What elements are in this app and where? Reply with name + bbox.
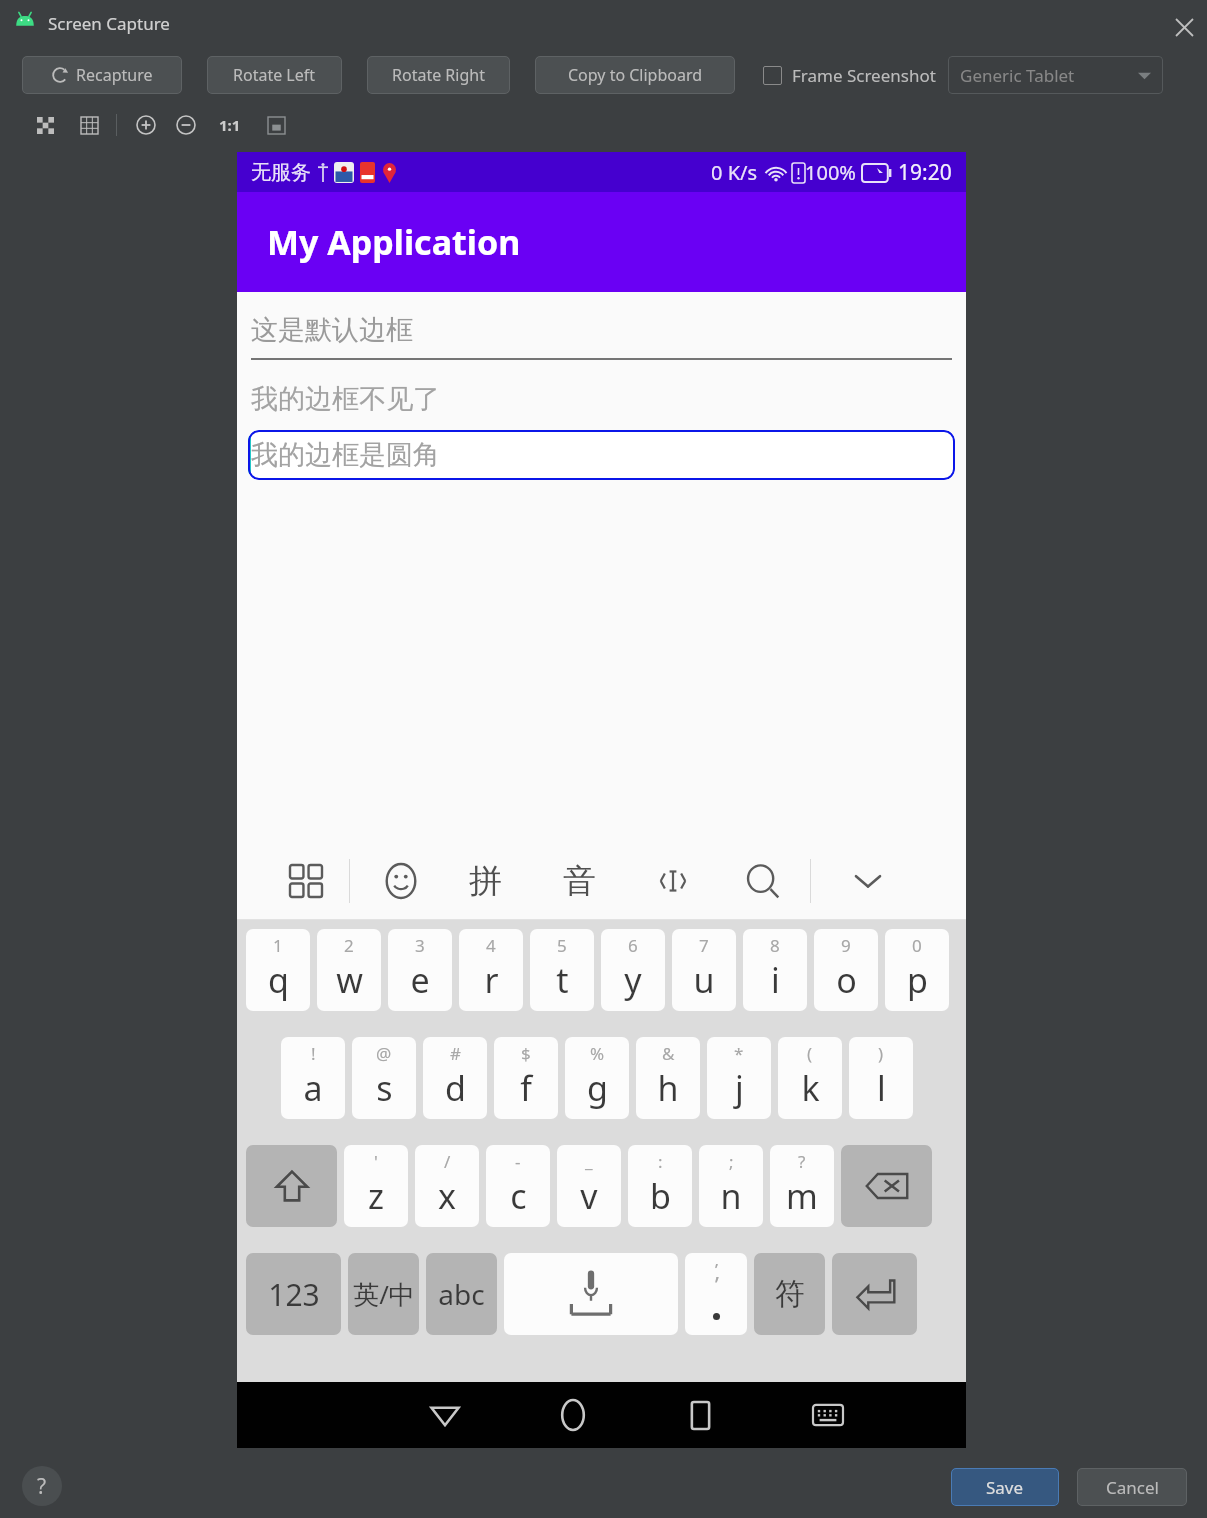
button[interactable]: 3 — [388, 929, 452, 1011]
button[interactable]: 8 — [743, 929, 807, 1011]
button[interactable]: ; — [699, 1145, 763, 1227]
button[interactable]: : — [628, 1145, 692, 1227]
button[interactable]: Cursor move — [644, 852, 702, 910]
staticText: 拼 — [469, 860, 502, 902]
button[interactable]: 英/中 — [348, 1253, 419, 1335]
button[interactable]: Hide keyboard — [839, 852, 897, 910]
button[interactable]: ? — [770, 1145, 834, 1227]
staticText: : — [658, 1150, 663, 1173]
button[interactable]: Emoji — [372, 852, 430, 910]
staticText: abc — [438, 1275, 485, 1313]
staticText: Generic Tablet — [960, 64, 1075, 87]
staticText: 3 — [415, 934, 425, 957]
button[interactable]: - — [486, 1145, 550, 1227]
button[interactable]: @ — [352, 1037, 416, 1119]
staticText: 100% — [805, 159, 856, 186]
staticText: l — [877, 1065, 886, 1111]
button[interactable]: 4 — [459, 929, 523, 1011]
button[interactable]: * — [707, 1037, 771, 1119]
staticText: s — [376, 1065, 393, 1111]
button[interactable]: 5 — [530, 929, 594, 1011]
button[interactable]: Cancel — [1077, 1468, 1187, 1506]
button[interactable]: Rotate Left — [207, 56, 342, 94]
staticText: b — [650, 1173, 671, 1219]
button[interactable]: Recapture — [22, 56, 182, 94]
staticText: ’ — [715, 1269, 719, 1299]
button[interactable]: Zoom out — [171, 110, 201, 140]
button[interactable]: Enter — [832, 1253, 917, 1335]
staticText: _ — [585, 1150, 593, 1173]
button[interactable]: Home — [545, 1387, 601, 1443]
staticText: u — [693, 957, 715, 1003]
staticText: o — [836, 957, 857, 1003]
staticText: 123 — [268, 1274, 320, 1315]
button[interactable]: Shift — [246, 1145, 337, 1227]
button[interactable]: 2 — [317, 929, 381, 1011]
button[interactable]: ) — [849, 1037, 913, 1119]
button[interactable]: 9 — [814, 929, 878, 1011]
staticText: My Application — [267, 219, 521, 265]
button[interactable]: Recents — [672, 1387, 728, 1443]
button[interactable]: Fit to window — [261, 110, 291, 140]
button[interactable]: Switch keyboard — [800, 1387, 856, 1443]
button[interactable]: Frame Screenshot — [763, 64, 936, 87]
staticText: g — [587, 1065, 608, 1111]
button[interactable]: _ — [557, 1145, 621, 1227]
button[interactable]: # — [423, 1037, 487, 1119]
button[interactable]: / — [415, 1145, 479, 1227]
button[interactable]: Back — [417, 1387, 473, 1443]
button[interactable]: & — [636, 1037, 700, 1119]
button[interactable]: Zoom in — [131, 110, 161, 140]
button[interactable]: ( — [778, 1037, 842, 1119]
button[interactable]: $ — [494, 1037, 558, 1119]
button[interactable]: 123 — [246, 1253, 341, 1335]
button[interactable]: ’ — [685, 1253, 747, 1335]
button[interactable]: Copy to Clipboard — [535, 56, 735, 94]
staticText: $ — [521, 1042, 531, 1065]
button[interactable]: Space / voice input — [504, 1253, 678, 1335]
staticText: 5 — [557, 934, 567, 957]
button[interactable]: Keyboard menu — [277, 852, 335, 910]
staticText: * — [734, 1042, 744, 1065]
button[interactable]: 1:1 — [213, 110, 247, 140]
button[interactable]: 拼 — [456, 852, 514, 910]
staticText: 我的边框不见了 — [251, 382, 440, 416]
button[interactable]: Save — [951, 1468, 1059, 1506]
button[interactable]: Rotate Right — [367, 56, 510, 94]
staticText: 英/中 — [353, 1276, 415, 1312]
button[interactable]: 我的边框是圆角 — [248, 430, 955, 480]
button[interactable]: ! — [281, 1037, 345, 1119]
button[interactable]: Help — [22, 1466, 62, 1506]
button[interactable]: 1 — [246, 929, 310, 1011]
staticText: t — [556, 957, 569, 1003]
button[interactable]: 7 — [672, 929, 736, 1011]
button[interactable]: Backspace — [841, 1145, 932, 1227]
button[interactable]: abc — [426, 1253, 497, 1335]
staticText: / — [444, 1150, 451, 1173]
staticText: y — [624, 957, 642, 1003]
button[interactable]: Grid — [74, 110, 104, 140]
staticText: 我的边框是圆角 — [251, 438, 440, 472]
button[interactable]: Transparency — [30, 110, 60, 140]
button[interactable]: % — [565, 1037, 629, 1119]
button[interactable]: Close — [1161, 4, 1207, 50]
staticText: n — [720, 1173, 742, 1219]
staticText: Screen Capture — [48, 12, 170, 35]
button[interactable]: 符 — [754, 1253, 825, 1335]
staticText: 7 — [699, 934, 709, 957]
staticText: j — [735, 1065, 744, 1111]
staticText: z — [368, 1173, 384, 1219]
button[interactable]: 音 — [550, 852, 608, 910]
button[interactable]: 0 — [885, 929, 949, 1011]
staticText: 音 — [563, 860, 596, 902]
staticText: 1:1 — [219, 115, 241, 135]
staticText: @ — [376, 1042, 392, 1065]
button[interactable]: Search — [734, 852, 792, 910]
button[interactable]: Generic Tablet — [948, 56, 1163, 94]
button[interactable]: ' — [344, 1145, 408, 1227]
staticText: p — [907, 957, 928, 1003]
button[interactable]: 6 — [601, 929, 665, 1011]
staticText: # — [450, 1042, 461, 1065]
staticText: w — [336, 957, 363, 1003]
staticText: Cancel — [1106, 1476, 1159, 1499]
